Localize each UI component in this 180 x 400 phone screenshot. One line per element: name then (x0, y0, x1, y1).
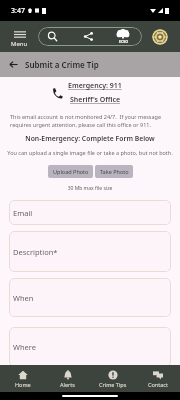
button[interactable]: Sheriff logo (116, 29, 130, 44)
staticText: When (13, 293, 34, 303)
button[interactable]: Home (0, 365, 45, 392)
button[interactable]: Where (9, 327, 171, 367)
staticText: Crime Tips (99, 381, 127, 388)
button[interactable]: Description* (9, 231, 171, 272)
button[interactable]: Sheriff's Office (70, 95, 121, 105)
button[interactable]: Alerts (45, 365, 90, 392)
staticText: Alerts (60, 381, 75, 388)
staticText: Where (13, 342, 37, 352)
button[interactable]: Contact (135, 365, 180, 392)
button[interactable]: Share (83, 31, 94, 42)
button[interactable]: Menu (11, 31, 28, 48)
staticText: Take Photo (100, 168, 129, 175)
button[interactable]: Upload Photo (48, 165, 93, 178)
button[interactable]: Take Photo (95, 165, 133, 178)
staticText: Submit a Crime Tip (25, 59, 99, 70)
staticText: This email account is not monitored 24/7… (10, 113, 180, 129)
button[interactable]: Back (8, 59, 19, 70)
staticText: ECSO (119, 39, 128, 44)
button[interactable]: Crime Tips (90, 365, 135, 392)
staticText: You can upload a single image file or ta… (0, 149, 180, 156)
staticText: Home (15, 381, 31, 388)
button[interactable]: Emergency: 911 (68, 81, 122, 91)
button[interactable]: Search (47, 31, 58, 42)
button[interactable]: When (9, 278, 171, 317)
staticText: Menu (11, 40, 28, 48)
button[interactable]: Email (9, 200, 171, 225)
staticText: Non-Emergency: Complete Form Below (0, 134, 180, 143)
staticText: Description* (13, 247, 58, 257)
staticText: Contact (148, 381, 168, 388)
staticText: 3:47 (11, 6, 25, 16)
staticText: Upload Photo (53, 168, 89, 175)
button[interactable]: Sheriff badge (152, 29, 168, 45)
staticText: 30 Mb max file size (0, 185, 180, 192)
staticText: Email (13, 208, 33, 218)
